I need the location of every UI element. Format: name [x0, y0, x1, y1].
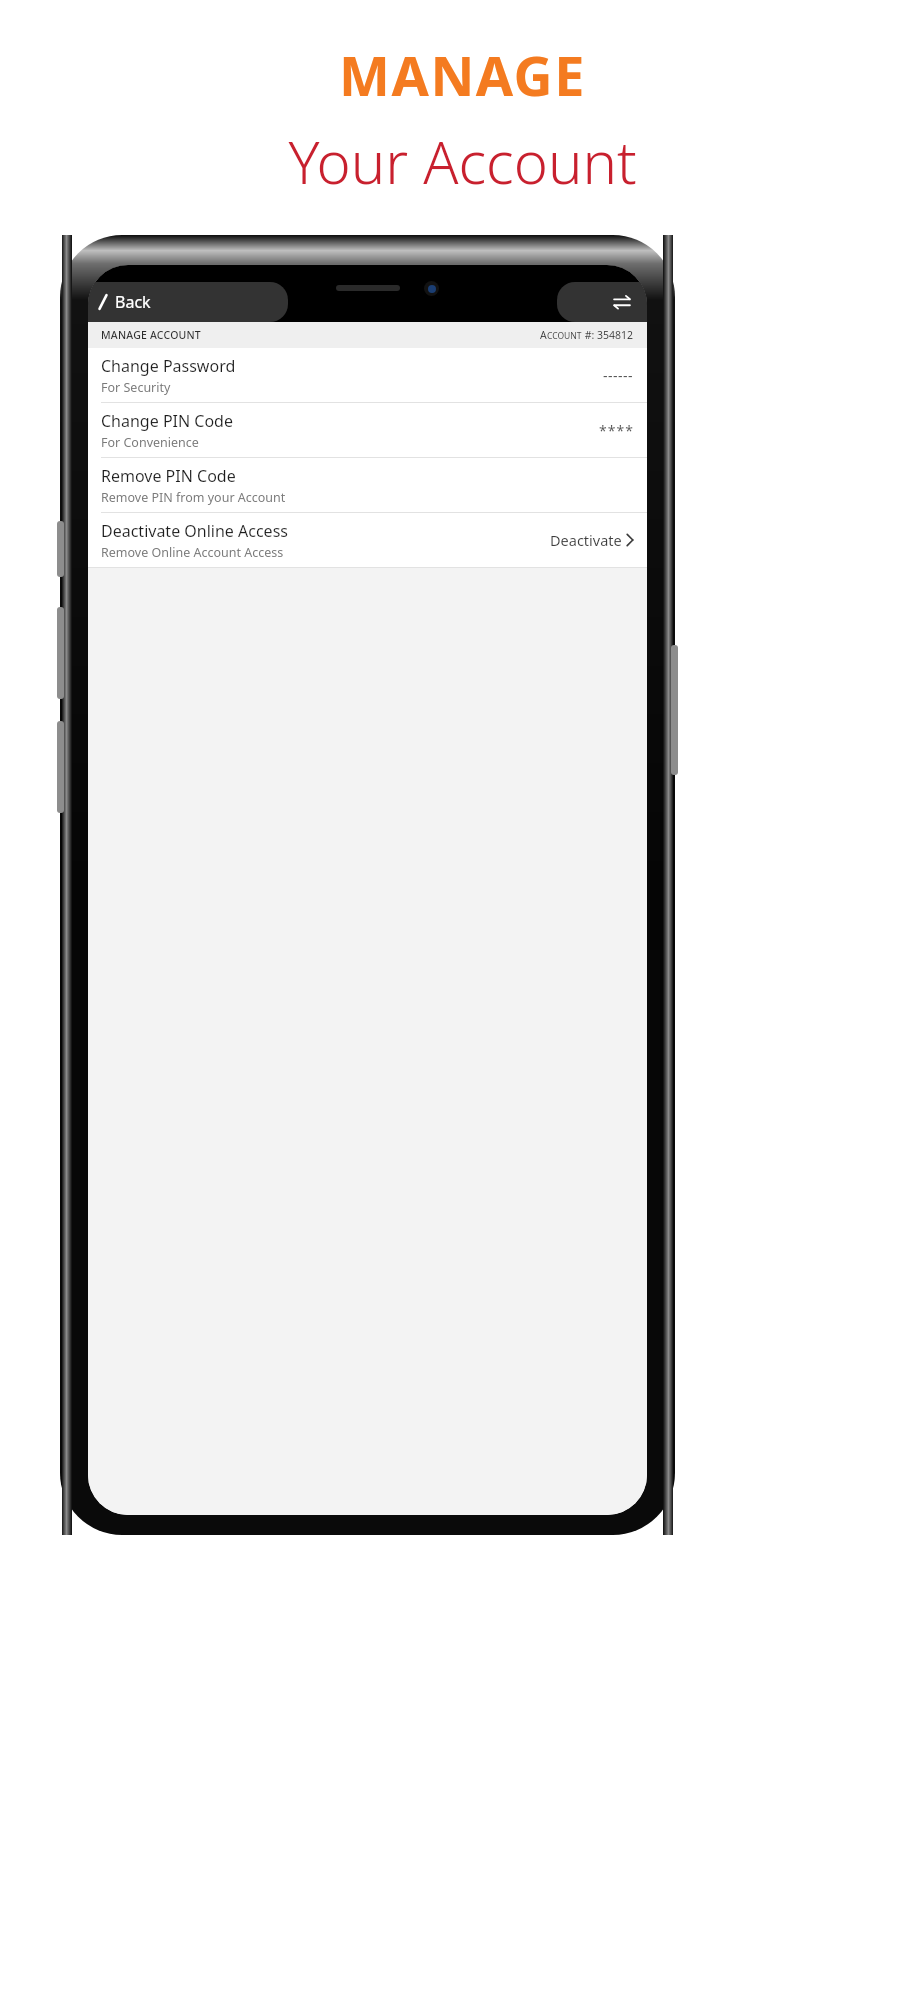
staticText: Deactivate [550, 530, 622, 550]
staticText: ------ [603, 366, 634, 385]
staticText: For Convenience [101, 434, 199, 451]
staticText: Remove PIN Code [101, 465, 236, 487]
button[interactable]: Back [88, 282, 165, 322]
button[interactable]: Deactivate Online Access [88, 513, 647, 567]
button[interactable]: Change PIN Code [88, 403, 647, 457]
staticText: **** [599, 421, 634, 440]
staticText: MANAGE ACCOUNT [101, 328, 201, 342]
staticText: Your Account [288, 122, 637, 201]
staticText: A [540, 328, 547, 342]
staticText: Change Password [101, 355, 236, 377]
staticText: Deactivate Online Access [101, 520, 288, 542]
staticText: Change PIN Code [101, 410, 233, 432]
staticText: CCOUNT [547, 330, 582, 342]
staticText: #: 354812 [582, 328, 634, 342]
button[interactable]: Remove PIN Code [88, 458, 647, 512]
staticText: Remove PIN from your Account [101, 489, 286, 506]
button[interactable]: Change Password [88, 348, 647, 402]
staticText: MANAGE [339, 38, 586, 112]
staticText: Remove Online Account Access [101, 544, 284, 561]
button[interactable]: Switch account [597, 282, 647, 322]
staticText: For Security [101, 379, 171, 396]
staticText: Back [115, 291, 151, 313]
